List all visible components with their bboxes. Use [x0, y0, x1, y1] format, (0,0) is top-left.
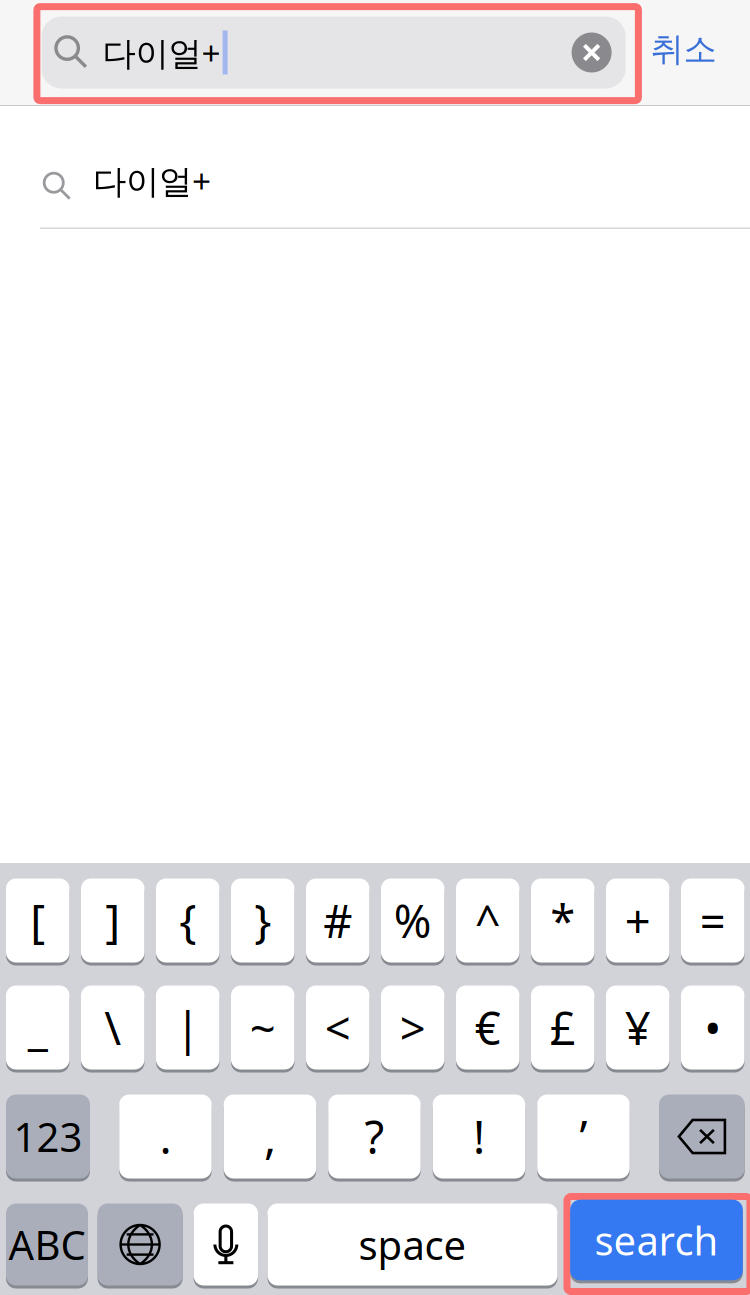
staticText: £: [550, 997, 576, 1058]
staticText: •: [704, 997, 721, 1058]
button[interactable]: !: [433, 1093, 525, 1180]
button[interactable]: ’: [537, 1093, 630, 1180]
staticText: \: [104, 997, 121, 1058]
staticText: €: [475, 997, 501, 1058]
button[interactable]: *: [531, 877, 594, 964]
button[interactable]: ^: [456, 877, 519, 964]
button[interactable]: ABC: [6, 1202, 88, 1287]
staticText: +: [625, 890, 651, 951]
button[interactable]: ?: [328, 1093, 421, 1180]
staticText: *: [550, 890, 575, 951]
staticText: >: [400, 997, 426, 1058]
staticText: |: [175, 997, 200, 1058]
button[interactable]: _: [6, 984, 69, 1071]
staticText: #: [323, 890, 352, 951]
button[interactable]: 123: [6, 1093, 90, 1180]
staticText: ~: [250, 997, 276, 1058]
button[interactable]: space: [267, 1202, 557, 1287]
staticText: }: [254, 890, 271, 951]
button[interactable]: >: [381, 984, 444, 1071]
button[interactable]: £: [531, 984, 594, 1071]
staticText: !: [473, 1106, 485, 1167]
button[interactable]: #: [306, 877, 369, 964]
button[interactable]: +: [606, 877, 669, 964]
button[interactable]: <: [306, 984, 369, 1071]
staticText: ]: [105, 890, 120, 951]
button[interactable]: Delete: [659, 1093, 745, 1180]
staticText: [: [30, 890, 45, 951]
staticText: search: [594, 1213, 718, 1266]
staticText: ’: [579, 1106, 587, 1167]
staticText: =: [700, 890, 726, 951]
button[interactable]: •: [681, 984, 744, 1071]
button[interactable]: ]: [81, 877, 144, 964]
staticText: {: [179, 890, 196, 951]
staticText: ABC: [8, 1218, 85, 1271]
staticText: %: [394, 890, 432, 951]
staticText: .: [159, 1106, 171, 1167]
button[interactable]: }: [231, 877, 294, 964]
button[interactable]: =: [681, 877, 744, 964]
button[interactable]: %: [381, 877, 444, 964]
button[interactable]: ~: [231, 984, 294, 1071]
staticText: <: [325, 997, 351, 1058]
staticText: 다이얼+: [93, 158, 211, 203]
button[interactable]: €: [456, 984, 519, 1071]
staticText: ^: [475, 890, 501, 951]
staticText: ?: [364, 1106, 384, 1167]
staticText: ¥: [625, 997, 651, 1058]
button[interactable]: ¥: [606, 984, 669, 1071]
staticText: 다이얼+: [103, 30, 221, 75]
staticText: 취소: [650, 29, 716, 70]
button[interactable]: Next keyboard: [98, 1202, 183, 1287]
button[interactable]: |: [156, 984, 219, 1071]
button[interactable]: search: [567, 1196, 750, 1291]
button[interactable]: .: [119, 1093, 212, 1180]
button[interactable]: {: [156, 877, 219, 964]
button[interactable]: ,: [224, 1093, 316, 1180]
button[interactable]: 다이얼+: [42, 16, 626, 88]
staticText: ,: [264, 1106, 276, 1167]
staticText: space: [358, 1218, 466, 1271]
staticText: 123: [13, 1110, 82, 1163]
button[interactable]: [: [6, 877, 69, 964]
button[interactable]: Dictation: [194, 1202, 258, 1287]
staticText: _: [28, 997, 48, 1058]
button[interactable]: 취소: [650, 13, 746, 85]
button[interactable]: 다이얼+: [0, 124, 750, 245]
button[interactable]: \: [81, 984, 144, 1071]
